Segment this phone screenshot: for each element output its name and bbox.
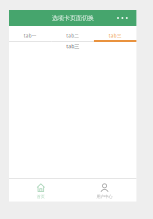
- staticText: tab一: [24, 32, 37, 39]
- staticText: tab三: [109, 32, 122, 39]
- button[interactable]: tab二: [51, 26, 94, 42]
- button[interactable]: 用户中心: [73, 179, 136, 201]
- button[interactable]: tab三: [94, 26, 136, 42]
- staticText: tab三: [66, 43, 79, 50]
- staticText: 首页: [37, 194, 45, 199]
- staticText: tab二: [66, 32, 79, 39]
- button[interactable]: More options: [111, 10, 133, 26]
- button[interactable]: tab一: [9, 26, 51, 42]
- button[interactable]: 首页: [9, 179, 73, 201]
- staticText: 选项卡页面切换: [52, 14, 94, 22]
- staticText: 用户中心: [97, 194, 113, 199]
